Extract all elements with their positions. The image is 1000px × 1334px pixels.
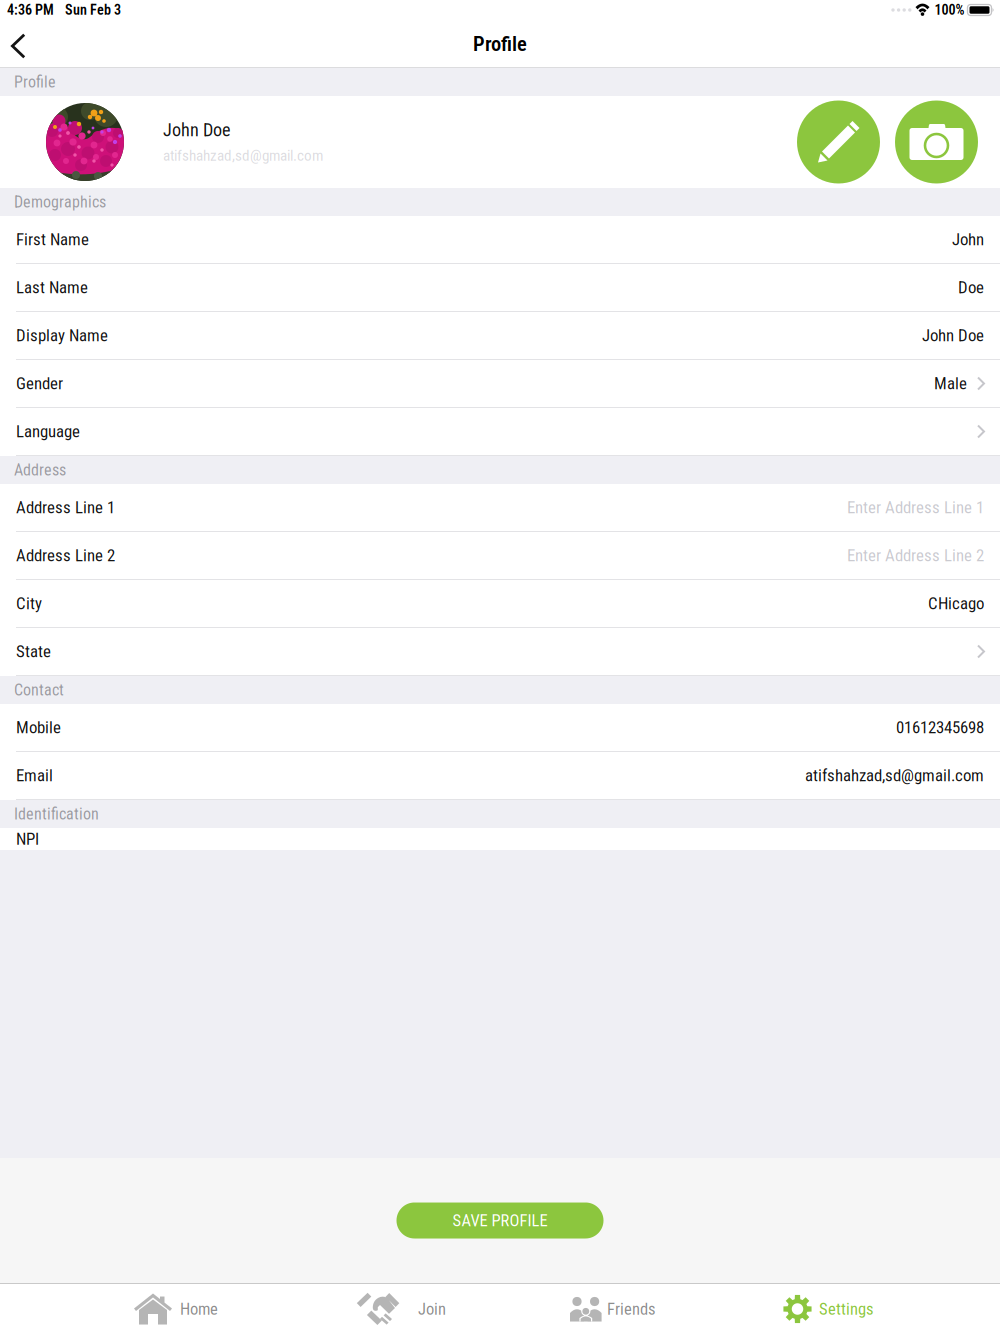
staticText: Identification	[14, 805, 99, 823]
button[interactable]: Gender	[0, 360, 1000, 408]
staticText: John	[952, 230, 984, 249]
button[interactable]: NPI	[0, 828, 1000, 850]
staticText: Language	[16, 422, 80, 441]
staticText: 01612345698	[896, 718, 984, 737]
button[interactable]: Last Name	[0, 264, 1000, 312]
staticText: CHicago	[928, 594, 984, 613]
staticText: Profile	[14, 73, 56, 91]
button[interactable]: City	[0, 580, 1000, 628]
staticText: Last Name	[16, 278, 88, 297]
button[interactable]: SAVE PROFILE	[396, 1202, 603, 1238]
staticText: Display Name	[16, 326, 108, 345]
staticText: John Doe	[922, 326, 984, 345]
staticText: Email	[16, 766, 53, 785]
staticText: Mobile	[16, 718, 61, 737]
button[interactable]: Display Name	[0, 312, 1000, 360]
staticText: atifshahzad,sd@gmail.com	[163, 147, 323, 164]
staticText: Gender	[16, 374, 63, 393]
staticText: 4:36 PM	[7, 2, 54, 18]
staticText: Join	[418, 1299, 446, 1319]
staticText: 100%	[934, 2, 964, 18]
button[interactable]: Address Line 1	[0, 484, 1000, 532]
staticText: Friends	[607, 1299, 656, 1319]
staticText: Enter Address Line 1	[847, 498, 984, 517]
staticText: Settings	[819, 1299, 874, 1319]
staticText: Home	[180, 1299, 218, 1319]
button[interactable]: First Name	[0, 216, 1000, 264]
staticText: Demographics	[14, 193, 106, 211]
staticText: Address	[14, 461, 66, 479]
staticText: John Doe	[163, 119, 231, 141]
staticText: Sun Feb 3	[65, 2, 121, 18]
button[interactable]: Home	[0, 1284, 250, 1334]
button[interactable]: Email	[0, 752, 1000, 800]
staticText: First Name	[16, 230, 89, 249]
button[interactable]: Change profile photo	[895, 100, 978, 183]
button[interactable]: State	[0, 628, 1000, 676]
button[interactable]: Join	[250, 1284, 500, 1334]
staticText: Profile	[473, 32, 527, 56]
staticText: NPI	[16, 829, 39, 849]
staticText: State	[16, 642, 51, 661]
staticText: Contact	[14, 681, 64, 699]
staticText: Enter Address Line 2	[847, 546, 984, 565]
button[interactable]: Address Line 2	[0, 532, 1000, 580]
button[interactable]: Settings	[750, 1284, 1000, 1334]
staticText: Address Line 2	[16, 546, 115, 565]
button[interactable]: Edit profile	[797, 100, 880, 183]
staticText: atifshahzad,sd@gmail.com	[805, 766, 984, 785]
staticText: Address Line 1	[16, 498, 115, 517]
staticText: City	[16, 594, 42, 613]
staticText: Male	[934, 374, 967, 393]
button[interactable]: Back	[0, 21, 45, 67]
staticText: SAVE PROFILE	[452, 1211, 547, 1230]
button[interactable]: Mobile	[0, 704, 1000, 752]
button[interactable]: Friends	[500, 1284, 750, 1334]
staticText: Doe	[958, 278, 984, 297]
button[interactable]: Language	[0, 408, 1000, 456]
